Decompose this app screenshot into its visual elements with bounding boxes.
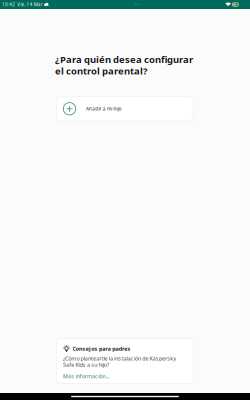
button[interactable]: Más información... xyxy=(63,368,109,380)
button[interactable]: Añadir a mi hijo xyxy=(57,97,193,120)
staticText: 10:42 Vie, 14 Mar xyxy=(2,1,43,8)
staticText: el control parental? xyxy=(55,64,148,77)
staticText: Más información... xyxy=(63,372,109,380)
staticText: Safe Kids a su hijo? xyxy=(63,361,109,368)
staticText: ¿Para quién desea configurar xyxy=(55,53,193,66)
staticText: ¿Cómo planteartle la instalación de Kasp… xyxy=(63,355,176,362)
staticText: Añadir a mi hijo xyxy=(86,106,122,112)
staticText: Consejos para padres xyxy=(73,345,130,352)
staticText: • • • xyxy=(135,2,140,7)
